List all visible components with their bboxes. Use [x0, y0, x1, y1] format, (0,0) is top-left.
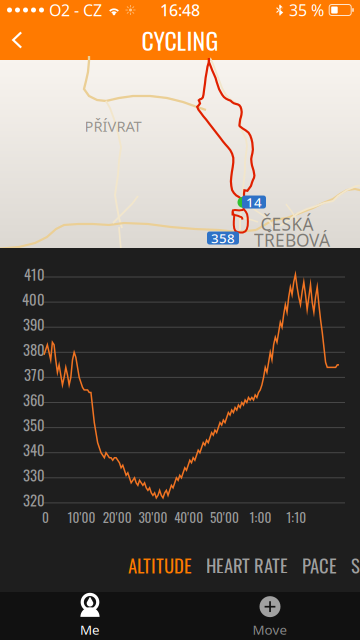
staticText: 370	[24, 363, 45, 385]
staticText: 390	[23, 313, 45, 335]
staticText: 10'00	[67, 507, 95, 527]
staticText: TŘEBOVÁ	[254, 228, 330, 251]
staticText: 16:48	[160, 0, 200, 21]
staticText: 360	[23, 389, 45, 410]
staticText: 330	[23, 464, 45, 486]
button[interactable]: Me	[0, 592, 180, 640]
staticText: 1:00	[249, 507, 271, 527]
staticText: PACE	[302, 551, 337, 579]
staticText: 35 %	[289, 0, 324, 21]
staticText: 30'00	[138, 507, 167, 527]
staticText: CYCLING	[141, 22, 218, 58]
staticText: 0	[42, 507, 49, 527]
staticText: ALTITUDE	[128, 551, 192, 579]
staticText: 400	[22, 288, 45, 310]
staticText: Move	[252, 621, 287, 638]
staticText: 350	[23, 414, 45, 435]
staticText: Me	[80, 621, 100, 638]
button[interactable]: Move	[180, 592, 360, 640]
staticText: PŘÍVRAT	[84, 116, 141, 136]
staticText: 14	[246, 193, 262, 211]
staticText: 50'00	[210, 507, 239, 527]
button[interactable]: Back	[0, 20, 40, 60]
staticText: S	[351, 551, 360, 579]
button[interactable]: PACE	[295, 548, 344, 582]
staticText: ČESKÁ	[260, 212, 313, 235]
staticText: 320	[23, 489, 45, 511]
button[interactable]: HEART RATE	[199, 548, 295, 582]
staticText: 40'00	[174, 507, 203, 527]
button[interactable]: S	[344, 548, 360, 582]
staticText: O2 - CZ	[49, 0, 102, 21]
staticText: 1:10	[286, 507, 306, 527]
staticText: 358	[211, 229, 235, 247]
button[interactable]: ALTITUDE	[121, 548, 199, 582]
staticText: HEART RATE	[206, 551, 288, 579]
staticText: 20'00	[103, 507, 132, 527]
staticText: 380	[23, 338, 45, 360]
staticText: 410	[24, 263, 45, 285]
staticText: 340	[23, 439, 45, 460]
